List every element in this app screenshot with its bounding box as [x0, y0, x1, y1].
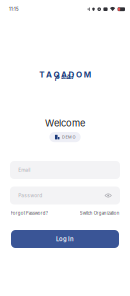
staticText: Password — [18, 193, 42, 198]
staticText: DEMO — [62, 135, 75, 139]
staticText: 11:15 — [9, 7, 19, 12]
button[interactable]: Switch Organization — [80, 211, 120, 216]
staticText: Welcome — [45, 118, 85, 129]
staticText: TAQADOM — [39, 70, 91, 79]
button[interactable]: Log In — [11, 230, 119, 248]
staticText: تقدم — [54, 70, 74, 81]
staticText: Forgot Password? — [11, 211, 48, 216]
staticText: Log In — [56, 235, 74, 243]
staticText: Email — [18, 167, 30, 173]
staticText: Switch Organization — [80, 211, 120, 216]
button[interactable]: Forgot Password? — [11, 211, 48, 216]
